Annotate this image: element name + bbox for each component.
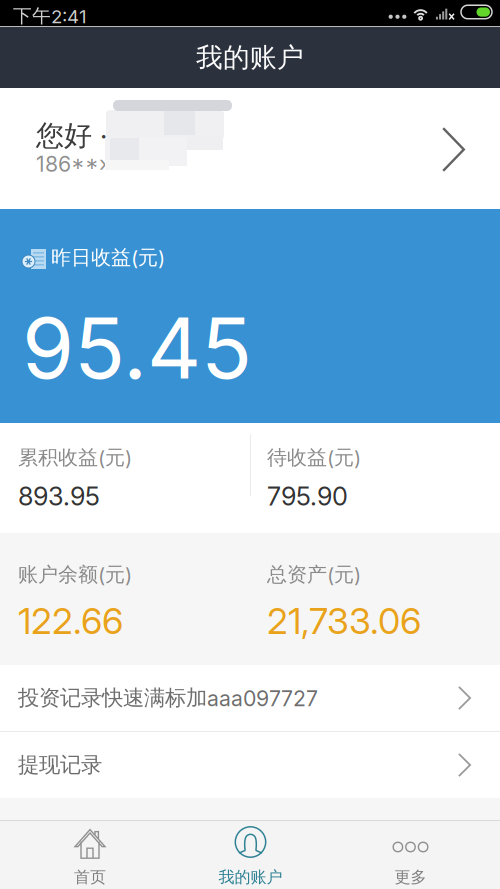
- staticText: 累积收益(元): [18, 445, 132, 470]
- staticText: 总资产(元): [267, 562, 361, 587]
- staticText: 下午2:41: [13, 4, 87, 28]
- staticText: 795.90: [267, 481, 348, 512]
- button[interactable]: 首页: [0, 820, 180, 889]
- button[interactable]: 提现记录: [0, 732, 500, 798]
- staticText: 投资记录快速满标加aaa097727: [18, 685, 318, 711]
- staticText: 893.95: [18, 481, 100, 512]
- staticText: 我的账户: [196, 41, 304, 74]
- button[interactable]: 投资记录快速满标加aaa097727: [0, 665, 500, 731]
- staticText: 待收益(元): [267, 445, 361, 470]
- staticText: 首页: [74, 867, 106, 887]
- button[interactable]: 更多: [321, 820, 500, 889]
- staticText: 122.66: [18, 599, 123, 643]
- staticText: 账户余额(元): [18, 562, 132, 587]
- button[interactable]: 您好 ·: [0, 88, 500, 209]
- staticText: 更多: [394, 867, 426, 887]
- button[interactable]: 我的账户: [180, 820, 321, 889]
- staticText: 昨日收益(元): [51, 245, 165, 270]
- staticText: 我的账户: [218, 867, 282, 887]
- staticText: 提现记录: [18, 752, 102, 778]
- staticText: 21,733.06: [267, 599, 421, 643]
- staticText: 95.45: [22, 297, 252, 399]
- staticText: 186**›: [36, 151, 107, 177]
- staticText: 您好 ·: [36, 118, 107, 153]
